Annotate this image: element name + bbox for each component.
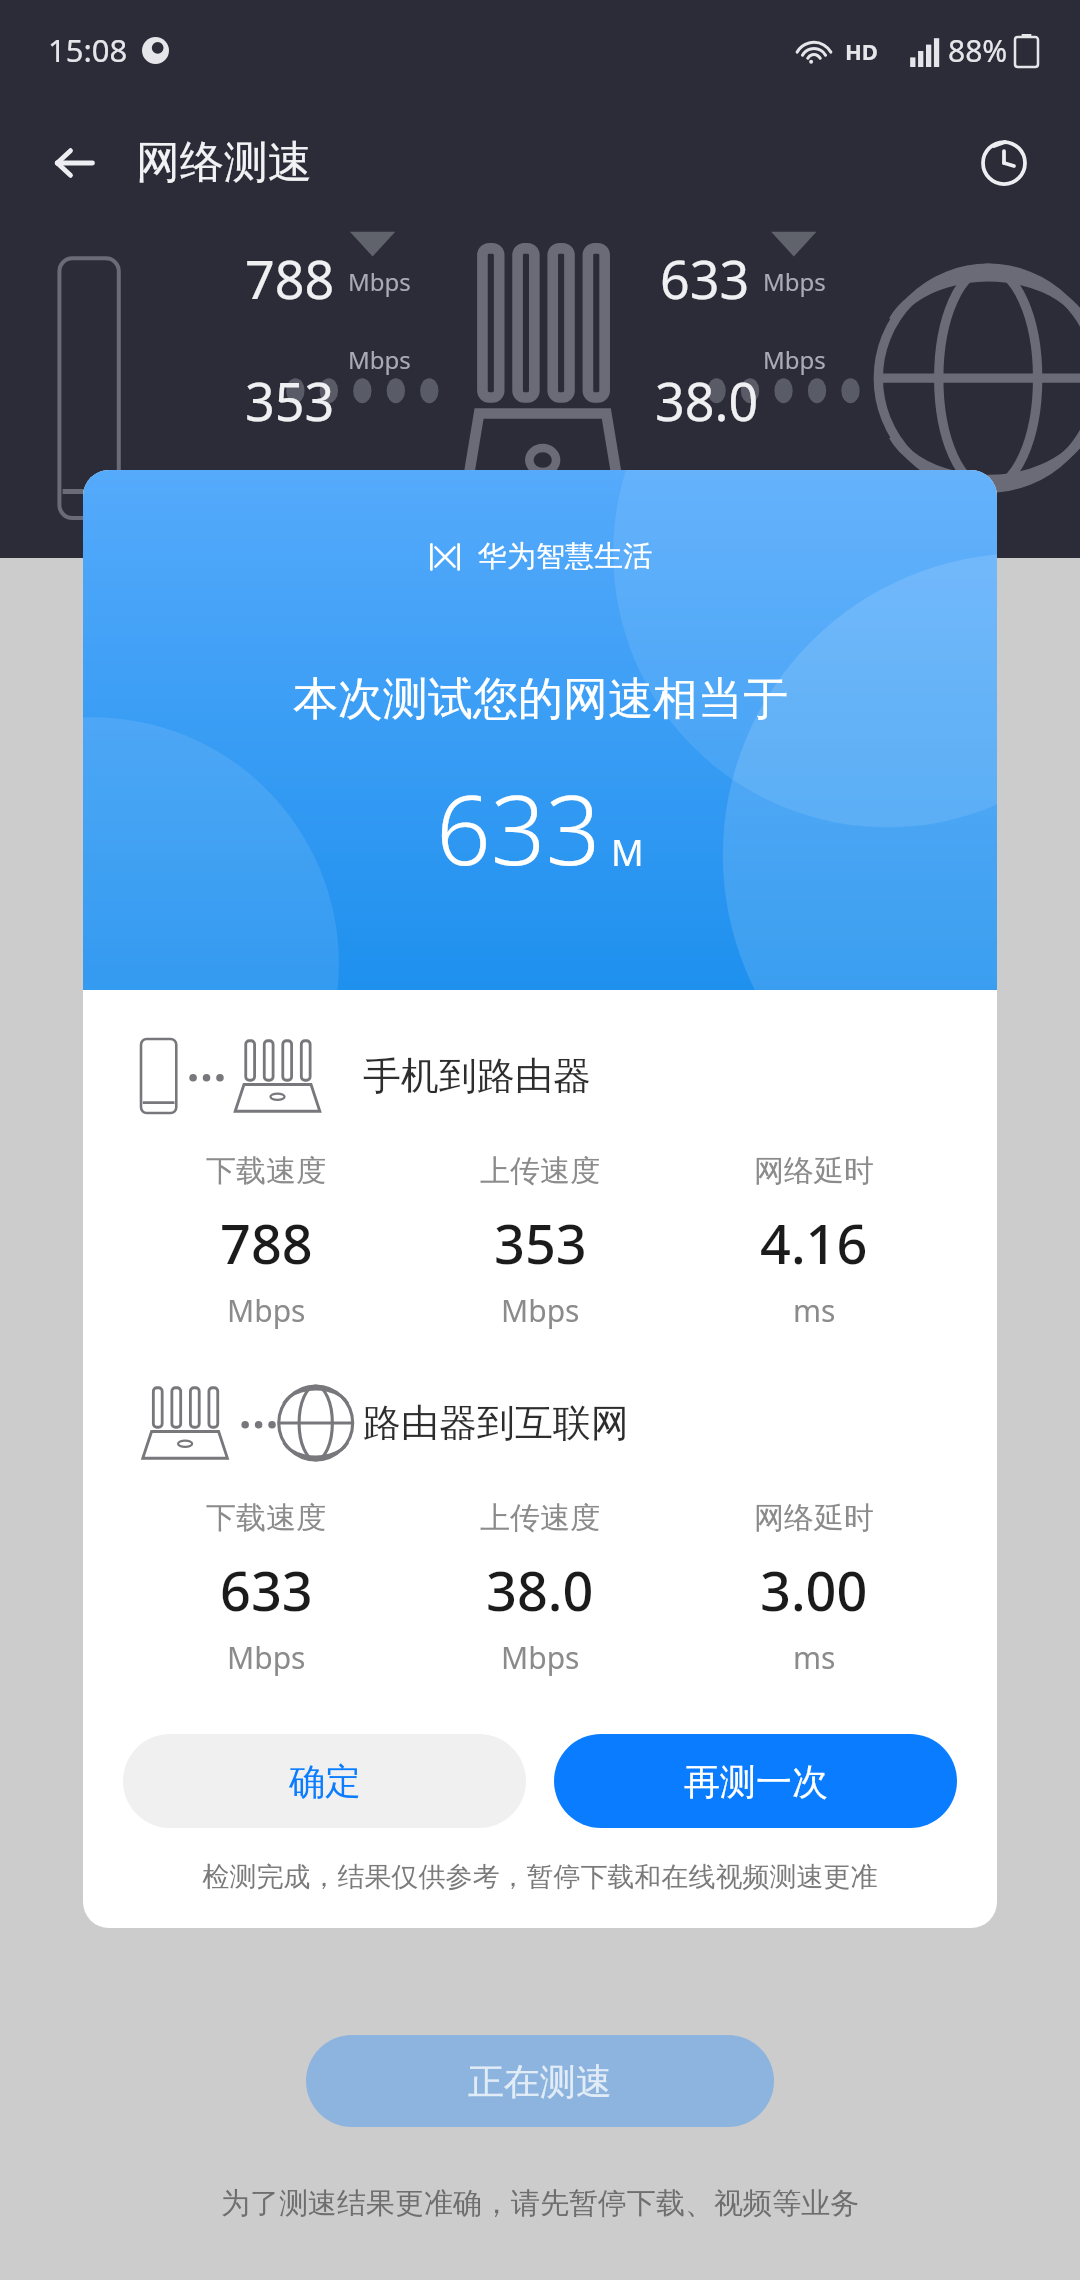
staticText: 788 [220,1206,313,1280]
staticText: 检测完成，结果仅供参考，暂停下载和在线视频测速更准 [83,1860,997,1894]
staticText: Mbps [348,343,411,376]
staticText: Mbps [763,265,826,298]
staticText: 路由器到互联网 [363,1399,629,1447]
staticText: 网络延时 [754,1152,874,1190]
staticText: Mbps [227,1290,306,1331]
staticText: 633 [220,1553,313,1627]
staticText: 确定 [289,1759,361,1804]
staticText: 手机到路由器 [363,1052,591,1100]
staticText: Mbps [501,1637,580,1678]
button[interactable]: History [962,121,1046,205]
staticText: ms [793,1637,836,1678]
button[interactable]: 正在测速 [306,2035,774,2127]
staticText: M [611,828,644,877]
staticText: Mbps [348,265,411,298]
staticText: 353 [494,1206,587,1280]
staticText: 本次测试您的网速相当于 [293,671,788,728]
staticText: Mbps [501,1290,580,1331]
staticText: 再测一次 [684,1759,828,1804]
staticText: 上传速度 [480,1152,600,1190]
staticText: 为了测速结果更准确，请先暂停下载、视频等业务 [221,2185,859,2222]
staticText: Mbps [227,1637,306,1678]
staticText: 633 [660,243,750,314]
staticText: 88% [948,30,1008,71]
staticText: 华为智慧生活 [478,538,652,575]
staticText: HD [845,36,878,66]
staticText: 633 [436,762,601,893]
staticText: ms [793,1290,836,1331]
staticText: 38.0 [486,1553,594,1627]
staticText: 3.00 [760,1553,868,1627]
button[interactable]: 确定 [123,1734,526,1828]
staticText: 正在测速 [468,2059,612,2104]
staticText: 353 [245,365,335,436]
button[interactable]: 再测一次 [554,1734,957,1828]
staticText: 网络延时 [754,1499,874,1537]
button[interactable]: Back [34,123,114,203]
staticText: Mbps [763,343,826,376]
staticText: 38.0 [655,365,759,436]
staticText: 下载速度 [206,1499,326,1537]
staticText: 788 [245,243,335,314]
staticText: 网络测速 [136,135,312,190]
staticText: 上传速度 [480,1499,600,1537]
staticText: 15:08 [48,29,128,71]
staticText: 下载速度 [206,1152,326,1190]
staticText: 4.16 [760,1206,868,1280]
